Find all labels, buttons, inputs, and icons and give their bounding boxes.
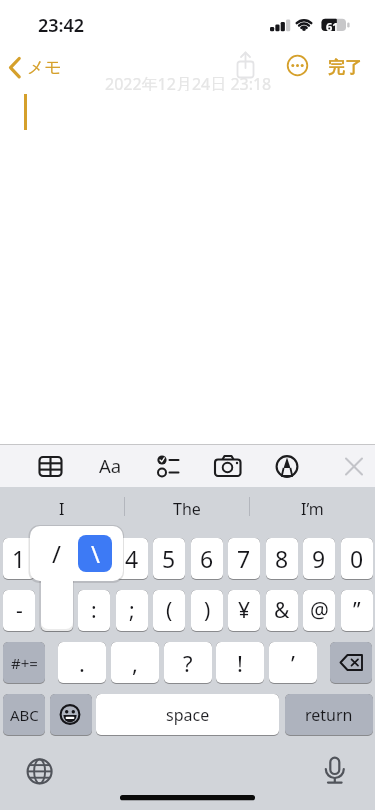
- button[interactable]: :: [78, 590, 110, 632]
- staticText: 8: [275, 543, 289, 574]
- button[interactable]: 9: [303, 538, 335, 580]
- button[interactable]: ,: [111, 642, 159, 684]
- button[interactable]: [212, 453, 243, 479]
- button[interactable]: [148, 453, 181, 479]
- button[interactable]: -: [3, 590, 35, 632]
- button[interactable]: [286, 54, 309, 77]
- staticText: ,: [132, 648, 138, 678]
- button[interactable]: (: [153, 590, 185, 632]
- button[interactable]: ¥: [228, 590, 260, 632]
- button[interactable]: [340, 453, 364, 479]
- staticText: 1: [12, 543, 26, 574]
- button[interactable]: ’: [269, 642, 317, 684]
- button[interactable]: Aa: [95, 453, 125, 478]
- button[interactable]: [311, 748, 359, 796]
- button[interactable]: /: [41, 590, 73, 632]
- button[interactable]: @: [303, 590, 335, 632]
- button[interactable]: !: [216, 642, 264, 684]
- button[interactable]: [36, 453, 65, 479]
- staticText: ’: [291, 648, 295, 678]
- button[interactable]: ABC: [3, 694, 45, 736]
- staticText: I: [59, 498, 65, 518]
- staticText: The: [173, 498, 201, 518]
- button[interactable]: I’m: [280, 498, 344, 518]
- button[interactable]: 1: [3, 538, 35, 580]
- button[interactable]: return: [285, 694, 373, 736]
- button[interactable]: ?: [164, 642, 212, 684]
- staticText: 3: [87, 543, 101, 574]
- button[interactable]: ): [191, 590, 223, 632]
- button[interactable]: 3: [78, 538, 110, 580]
- button[interactable]: \: [78, 535, 112, 572]
- staticText: .: [79, 648, 85, 678]
- button[interactable]: 7: [228, 538, 260, 580]
- button[interactable]: .: [58, 642, 106, 684]
- staticText: 6: [200, 543, 214, 574]
- button[interactable]: 完了: [323, 57, 367, 77]
- staticText: 5: [162, 543, 176, 574]
- button[interactable]: ”: [341, 590, 373, 632]
- button[interactable]: space: [96, 694, 279, 736]
- staticText: &: [274, 596, 290, 625]
- button[interactable]: The: [155, 498, 219, 518]
- staticText: ABC: [10, 705, 39, 725]
- staticText: 2: [50, 543, 64, 574]
- staticText: @: [310, 596, 329, 625]
- staticText: ¥: [238, 596, 251, 625]
- button[interactable]: [330, 642, 372, 684]
- button[interactable]: 4: [116, 538, 148, 580]
- staticText: I’m: [301, 498, 324, 518]
- staticText: 4: [125, 543, 139, 574]
- staticText: ;: [129, 596, 135, 625]
- button[interactable]: [50, 694, 92, 736]
- button[interactable]: 5: [153, 538, 185, 580]
- staticText: 2022年12月24日 23:18: [105, 73, 272, 91]
- staticText: 61: [326, 19, 339, 32]
- button[interactable]: 8: [266, 538, 298, 580]
- staticText: \: [91, 537, 100, 570]
- staticText: #+=: [11, 653, 38, 673]
- staticText: space: [166, 704, 210, 726]
- staticText: 9: [312, 543, 326, 574]
- button[interactable]: [233, 50, 259, 80]
- staticText: ): [204, 596, 211, 625]
- staticText: 23:42: [38, 13, 85, 32]
- staticText: -: [16, 596, 23, 625]
- button[interactable]: I: [30, 498, 94, 518]
- button[interactable]: &: [266, 590, 298, 632]
- staticText: 7: [237, 543, 251, 574]
- button[interactable]: [274, 453, 300, 479]
- staticText: Aa: [99, 453, 122, 478]
- button[interactable]: メモ: [6, 52, 74, 80]
- button[interactable]: 2: [41, 538, 73, 580]
- staticText: (: [166, 596, 173, 625]
- staticText: ?: [183, 648, 193, 678]
- staticText: 0: [350, 543, 364, 574]
- staticText: /: [52, 537, 61, 570]
- staticText: メモ: [27, 57, 62, 78]
- staticText: :: [91, 596, 97, 625]
- staticText: return: [305, 704, 353, 726]
- staticText: !: [237, 648, 243, 678]
- staticText: 完了: [328, 57, 362, 77]
- button[interactable]: ;: [116, 590, 148, 632]
- button[interactable]: [16, 748, 64, 796]
- staticText: ”: [353, 596, 361, 625]
- button[interactable]: 0: [341, 538, 373, 580]
- button[interactable]: #+=: [3, 642, 45, 684]
- button[interactable]: 6: [191, 538, 223, 580]
